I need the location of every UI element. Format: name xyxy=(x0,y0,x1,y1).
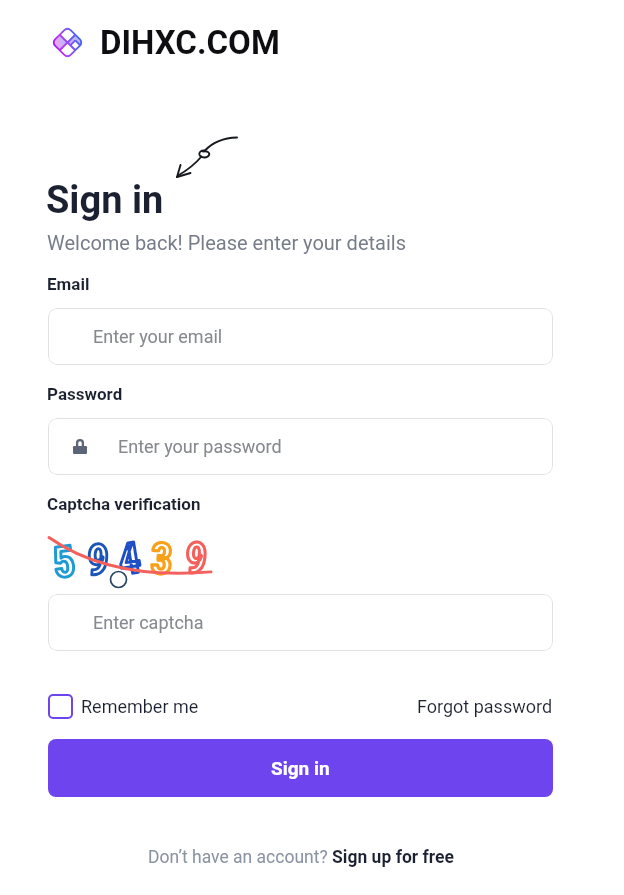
staticText: Enter your email xyxy=(93,326,223,347)
staticText: DIHXC.COM xyxy=(100,23,280,62)
staticText: Email xyxy=(47,274,90,294)
staticText: Password xyxy=(47,384,123,404)
staticText: Enter your password xyxy=(118,436,282,457)
button[interactable]: Forgot password xyxy=(417,696,553,717)
other: Captcha image 59439 xyxy=(48,536,216,582)
button[interactable]: Sign in xyxy=(48,739,553,797)
staticText: Welcome back! Please enter your details xyxy=(47,231,406,254)
staticText: Remember me xyxy=(81,696,199,717)
button[interactable]: Password field xyxy=(48,418,553,475)
button[interactable]: Enter captcha xyxy=(48,594,553,651)
staticText: Sign in xyxy=(46,178,164,223)
staticText: Enter captcha xyxy=(93,612,204,633)
button[interactable]: Remember me xyxy=(48,694,199,719)
other: Password field xyxy=(73,439,87,454)
other: DIHXC logo xyxy=(52,27,83,58)
button[interactable]: Enter your email xyxy=(48,308,553,365)
button[interactable]: Don’t have an account? Sign up for free xyxy=(48,847,553,868)
staticText: Don’t have an account? Sign up for free xyxy=(148,847,454,868)
staticText: Captcha verification xyxy=(47,494,201,514)
staticText: Sign in xyxy=(271,757,330,779)
